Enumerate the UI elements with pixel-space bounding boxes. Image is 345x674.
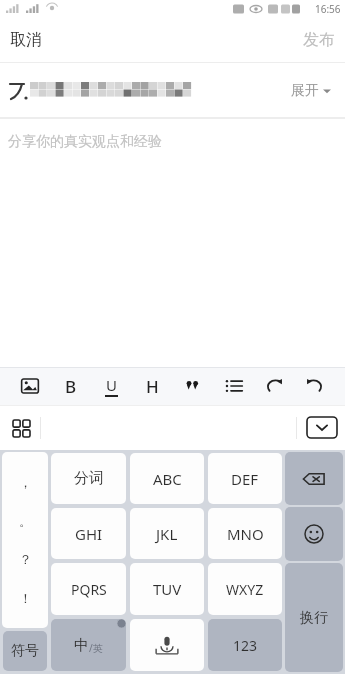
- button[interactable]: JKL: [130, 508, 204, 559]
- button[interactable]: B: [60, 375, 82, 397]
- staticText: 发布: [303, 30, 335, 50]
- button[interactable]: MNO: [208, 508, 282, 559]
- button[interactable]: Bold: [60, 375, 82, 397]
- button[interactable]: 发布: [293, 22, 345, 58]
- staticText: 换行: [300, 609, 328, 627]
- button[interactable]: Emoji: [285, 507, 343, 561]
- staticText: WXYZ: [226, 580, 264, 599]
- button[interactable]: Space / voice input: [130, 619, 204, 671]
- button[interactable]: DEF: [208, 453, 282, 504]
- staticText: B: [65, 375, 77, 397]
- button[interactable]: Quote: [182, 375, 204, 397]
- button[interactable]: 换行: [285, 563, 343, 672]
- button[interactable]: WXYZ: [208, 563, 282, 615]
- staticText: H: [146, 375, 159, 397]
- staticText: 分享你的真实观点和经验: [8, 133, 162, 151]
- staticText: 16:56: [315, 2, 341, 16]
- staticText: ！: [19, 590, 32, 606]
- button[interactable]: 取消: [0, 22, 52, 58]
- button[interactable]: More tools: [8, 415, 34, 441]
- staticText: 123: [233, 636, 258, 655]
- staticText: TUV: [153, 579, 182, 599]
- button[interactable]: ，: [2, 452, 48, 628]
- button[interactable]: Insert image: [19, 375, 41, 397]
- button[interactable]: U: [100, 375, 122, 397]
- staticText: GHI: [75, 524, 103, 544]
- staticText: ？: [19, 551, 32, 567]
- staticText: 取消: [10, 30, 42, 50]
- staticText: 展开: [291, 82, 319, 100]
- staticText: DEF: [231, 469, 259, 489]
- button[interactable]: Switch language: [51, 619, 126, 671]
- staticText: U: [106, 375, 117, 395]
- button[interactable]: Underline: [100, 375, 122, 397]
- button[interactable]: 123: [208, 619, 282, 671]
- staticText: 中: [74, 636, 89, 655]
- button[interactable]: GHI: [51, 508, 126, 559]
- button[interactable]: Redo: [304, 375, 326, 397]
- button[interactable]: 展开: [285, 76, 337, 106]
- staticText: 分词: [74, 469, 104, 488]
- button[interactable]: Undo: [263, 375, 285, 397]
- button[interactable]: ABC: [130, 453, 204, 504]
- button[interactable]: Heading: [141, 375, 163, 397]
- button[interactable]: List: [223, 375, 245, 397]
- button[interactable]: TUV: [130, 563, 204, 615]
- staticText: /英: [89, 641, 103, 655]
- staticText: PQRS: [71, 580, 107, 599]
- button[interactable]: H: [141, 375, 163, 397]
- button[interactable]: Collapse keyboard: [307, 417, 337, 438]
- button[interactable]: Backspace: [285, 452, 343, 505]
- button[interactable]: 符号: [3, 631, 47, 671]
- staticText: 符号: [11, 642, 39, 660]
- staticText: ，: [19, 474, 32, 490]
- staticText: ABC: [153, 469, 182, 489]
- staticText: 。: [19, 513, 32, 529]
- staticText: MNO: [227, 524, 264, 544]
- staticText: JKL: [156, 524, 178, 544]
- button[interactable]: PQRS: [51, 563, 126, 615]
- button[interactable]: 分词: [51, 453, 126, 504]
